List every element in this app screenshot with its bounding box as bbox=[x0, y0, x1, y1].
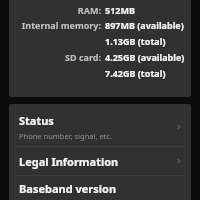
button[interactable]: Legal Information bbox=[9, 147, 191, 175]
staticText: Baseband version bbox=[19, 181, 117, 196]
staticText: Internal memory: bbox=[21, 19, 101, 31]
staticText: 4.25GB (available) bbox=[105, 51, 185, 63]
staticText: 7.42GB (total) bbox=[105, 67, 166, 79]
button[interactable]: Baseband version bbox=[9, 176, 191, 200]
staticText: 897MB (available) bbox=[105, 19, 184, 31]
other: Legal Information bbox=[175, 157, 183, 165]
other: Status bbox=[175, 123, 183, 131]
staticText: Status bbox=[19, 113, 54, 128]
staticText: Phone number, signal, etc. bbox=[19, 131, 112, 141]
staticText: 512MB bbox=[105, 4, 135, 16]
staticText: SD card: bbox=[65, 51, 101, 63]
staticText: RAM: bbox=[77, 4, 101, 16]
staticText: 1.13GB (total) bbox=[105, 35, 166, 47]
button[interactable]: Status bbox=[9, 108, 191, 146]
staticText: Legal Information bbox=[19, 154, 119, 169]
